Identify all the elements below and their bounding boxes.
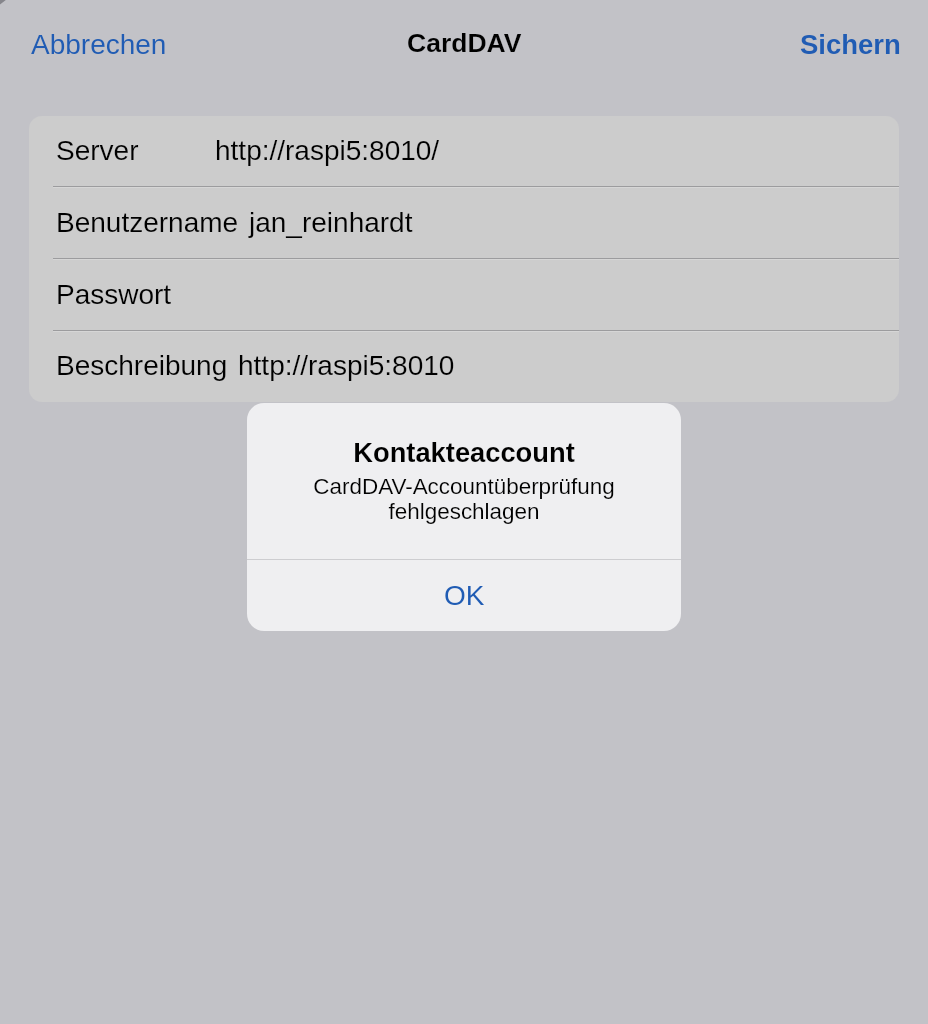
button[interactable]: Server (29, 116, 899, 188)
staticText: Kontakteaccount (247, 437, 681, 467)
staticText: Passwort (56, 279, 172, 310)
staticText: http://raspi5:8010/ (215, 135, 440, 166)
button[interactable]: Beschreibung (29, 332, 899, 402)
staticText: Server (56, 135, 139, 166)
button[interactable]: Abbrechen (31, 28, 167, 60)
staticText: http://raspi5:8010 (238, 350, 455, 381)
button[interactable]: Passwort (29, 260, 899, 332)
staticText: OK (444, 580, 485, 611)
staticText: Benutzername (56, 207, 239, 238)
button[interactable]: OK (247, 560, 681, 631)
other: Pointer (0, 0, 10, 10)
button[interactable]: Benutzername (29, 188, 899, 260)
button[interactable]: Sichern (800, 28, 901, 60)
staticText: Beschreibung (56, 350, 228, 381)
staticText: Sichern (800, 29, 901, 60)
staticText: jan_reinhardt (249, 207, 413, 238)
staticText: Abbrechen (31, 29, 167, 60)
staticText: CardDAV (407, 28, 522, 58)
staticText: CardDAV-Accountüberprüfung fehlgeschlage… (263, 474, 665, 524)
